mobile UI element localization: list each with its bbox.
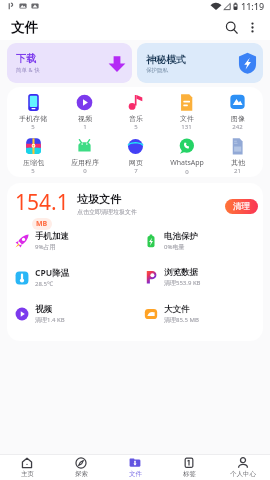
staticText: 131 bbox=[181, 123, 192, 131]
staticText: 0 bbox=[185, 168, 189, 176]
staticText: 电池保护 bbox=[164, 231, 198, 242]
staticText: 28.5℃ bbox=[35, 280, 53, 288]
staticText: 图像 bbox=[231, 114, 245, 123]
staticText: 主页 bbox=[21, 470, 34, 478]
button[interactable]: 神秘模式 bbox=[137, 43, 263, 83]
button[interactable]: Search bbox=[220, 16, 242, 38]
staticText: 其他 bbox=[231, 158, 245, 167]
staticText: 垃圾文件 bbox=[77, 192, 121, 206]
staticText: 手机加速 bbox=[35, 231, 69, 242]
staticText: 音乐 bbox=[129, 114, 143, 123]
button[interactable]: WhatsApp bbox=[161, 138, 212, 176]
button[interactable]: 浏览数据 bbox=[144, 267, 258, 287]
staticText: 压缩包 bbox=[23, 158, 44, 167]
staticText: 手机存储 bbox=[19, 114, 47, 123]
staticText: 网页 bbox=[129, 158, 143, 167]
staticText: 5 bbox=[31, 167, 35, 175]
staticText: 大文件 bbox=[164, 304, 190, 315]
button[interactable]: 标签 bbox=[162, 455, 216, 480]
staticText: 简单 & 快 bbox=[16, 66, 40, 74]
staticText: 0%电量 bbox=[164, 243, 185, 251]
staticText: 文件 bbox=[11, 19, 38, 36]
staticText: 神秘模式 bbox=[146, 53, 186, 66]
staticText: 点击立即清理垃圾文件 bbox=[77, 208, 137, 216]
staticText: 清理553.9 KB bbox=[164, 279, 201, 287]
button[interactable]: 大文件 bbox=[144, 304, 258, 324]
staticText: 文件 bbox=[180, 114, 194, 123]
button[interactable]: 个人中心 bbox=[216, 455, 270, 480]
button[interactable]: 视频 bbox=[59, 94, 110, 131]
staticText: CPU降温 bbox=[35, 267, 70, 279]
button[interactable]: 网页 bbox=[110, 138, 161, 175]
button[interactable]: CPU降温 bbox=[15, 267, 144, 288]
staticText: 浏览数据 bbox=[164, 267, 198, 278]
button[interactable]: 清理 bbox=[225, 199, 258, 214]
staticText: 保护隐私 bbox=[146, 67, 168, 74]
staticText: 标签 bbox=[183, 470, 196, 478]
staticText: WhatsApp bbox=[170, 158, 204, 168]
staticText: 个人中心 bbox=[230, 470, 256, 478]
button[interactable]: 手机加速 bbox=[15, 231, 144, 251]
staticText: 清理1.4 KB bbox=[35, 316, 65, 324]
button[interactable]: 其他 bbox=[212, 138, 263, 175]
staticText: 5 bbox=[31, 123, 35, 131]
staticText: 应用程序 bbox=[71, 158, 99, 167]
button[interactable]: 主页 bbox=[0, 455, 54, 480]
staticText: 0 bbox=[83, 167, 87, 175]
button[interactable]: 图像 bbox=[212, 94, 263, 131]
staticText: 21 bbox=[234, 167, 241, 175]
button[interactable]: 音乐 bbox=[110, 94, 161, 131]
button[interactable]: 下载 bbox=[7, 43, 132, 83]
staticText: 清理 bbox=[233, 201, 250, 212]
staticText: 清理85.5 MB bbox=[164, 316, 199, 324]
staticText: 下载 bbox=[16, 52, 36, 65]
staticText: 探索 bbox=[75, 470, 88, 478]
staticText: 7 bbox=[134, 167, 138, 175]
button[interactable]: 应用程序 bbox=[59, 138, 110, 175]
staticText: 视频 bbox=[35, 304, 52, 315]
button[interactable]: 探索 bbox=[54, 455, 108, 480]
button[interactable]: 文件 bbox=[108, 455, 162, 480]
button[interactable]: 视频 bbox=[15, 304, 144, 324]
staticText: 242 bbox=[232, 123, 243, 131]
staticText: 视频 bbox=[78, 114, 92, 123]
button[interactable]: 电池保护 bbox=[144, 231, 258, 251]
staticText: 11:19 bbox=[241, 0, 265, 12]
button[interactable]: 压缩包 bbox=[7, 138, 59, 175]
staticText: 1 bbox=[83, 123, 87, 131]
button[interactable]: More options bbox=[242, 17, 262, 37]
button[interactable]: 文件 bbox=[161, 94, 212, 131]
staticText: 5 bbox=[134, 123, 138, 131]
staticText: 9%占用 bbox=[35, 243, 56, 251]
staticText: MB bbox=[36, 219, 48, 229]
staticText: 文件 bbox=[129, 470, 142, 478]
staticText: 154.1 bbox=[15, 188, 69, 217]
button[interactable]: 手机存储 bbox=[7, 94, 59, 131]
